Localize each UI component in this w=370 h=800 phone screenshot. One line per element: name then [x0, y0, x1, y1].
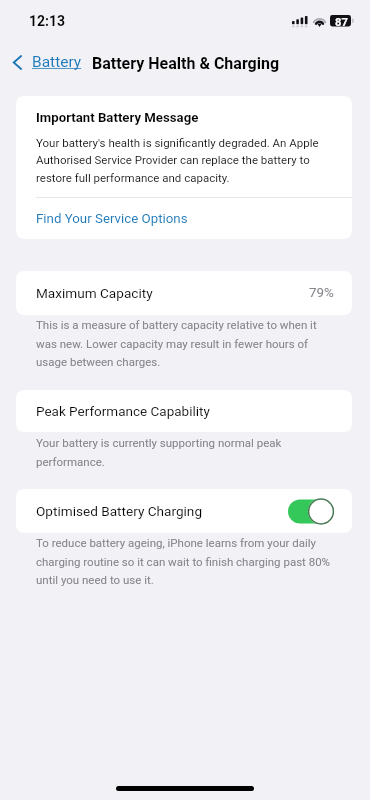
- staticText: Important Battery Message: [36, 110, 199, 125]
- staticText: 87: [335, 16, 348, 29]
- staticText: Your battery is currently supporting nor…: [36, 436, 334, 468]
- button[interactable]: Optimised Battery Charging toggle: [288, 498, 334, 525]
- button[interactable]: Back to Battery: [11, 51, 82, 73]
- other: Back to Battery: [11, 54, 22, 71]
- staticText: Maximum Capacity: [36, 285, 153, 301]
- staticText: This is a measure of battery capacity re…: [36, 318, 334, 368]
- staticText: To reduce battery ageing, iPhone learns …: [36, 536, 334, 586]
- staticText: 79%: [309, 285, 334, 301]
- button[interactable]: Find Your Service Options: [16, 198, 352, 239]
- button[interactable]: Peak Performance Capability: [16, 390, 352, 432]
- staticText: Your battery's health is significantly d…: [36, 136, 334, 185]
- staticText: Battery: [32, 53, 82, 71]
- staticText: 12:13: [29, 13, 66, 29]
- staticText: Battery Health & Charging: [92, 54, 280, 73]
- staticText: Peak Performance Capability: [36, 403, 210, 419]
- staticText: Find Your Service Options: [36, 211, 188, 227]
- button[interactable]: Maximum Capacity: [16, 271, 352, 315]
- staticText: Optimised Battery Charging: [36, 503, 203, 519]
